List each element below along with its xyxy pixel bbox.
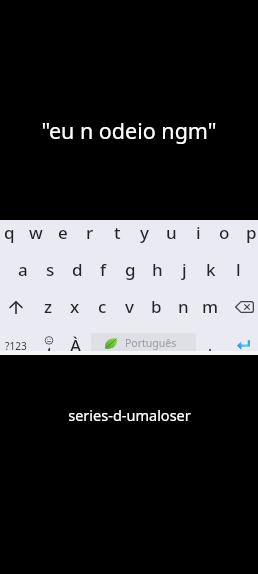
button[interactable]: ?123 — [0, 330, 31, 362]
button[interactable]: y — [131, 215, 157, 249]
button[interactable]: q — [0, 215, 22, 249]
staticText: c — [98, 295, 107, 318]
button[interactable]: Português — [91, 333, 196, 352]
staticText: Português — [125, 336, 177, 350]
staticText: q — [4, 221, 15, 244]
staticText: e — [58, 221, 68, 244]
button[interactable]: c — [89, 289, 115, 323]
button[interactable]: Emoji — [35, 330, 62, 362]
button[interactable]: z — [35, 289, 61, 323]
button[interactable]: À — [63, 328, 89, 362]
button[interactable]: k — [198, 252, 224, 286]
staticText: i — [196, 221, 201, 244]
button[interactable]: Shift — [2, 290, 29, 324]
staticText: À — [70, 334, 82, 357]
staticText: p — [246, 221, 257, 244]
staticText: t — [114, 221, 121, 244]
staticText: ?123 — [5, 339, 27, 353]
staticText: w — [29, 221, 43, 244]
button[interactable]: p — [238, 215, 258, 249]
button[interactable]: Backspace — [231, 290, 258, 324]
button[interactable]: i — [185, 215, 211, 249]
button[interactable]: s — [37, 252, 63, 286]
staticText: m — [202, 295, 219, 318]
button[interactable]: b — [143, 289, 169, 323]
staticText: d — [72, 258, 83, 281]
staticText: r — [86, 221, 94, 244]
staticText: z — [44, 295, 53, 318]
button[interactable]: h — [144, 252, 170, 286]
button[interactable]: o — [211, 215, 237, 249]
staticText: v — [125, 295, 134, 318]
button[interactable]: t — [104, 215, 130, 249]
button[interactable]: w — [23, 215, 49, 249]
staticText: . — [208, 335, 213, 355]
staticText: series-d-umaloser — [68, 405, 191, 425]
button[interactable]: Enter — [230, 328, 257, 360]
staticText: j — [182, 258, 187, 281]
staticText: y — [140, 221, 149, 244]
staticText: n — [178, 295, 189, 318]
staticText: "eu n odeio ngm" — [41, 116, 217, 145]
button[interactable]: n — [170, 289, 196, 323]
button[interactable]: j — [171, 252, 197, 286]
staticText: u — [166, 221, 177, 244]
button[interactable]: d — [64, 252, 90, 286]
staticText: s — [46, 258, 55, 281]
staticText: b — [151, 295, 162, 318]
button[interactable]: g — [117, 252, 143, 286]
staticText: x — [70, 295, 80, 318]
button[interactable]: m — [197, 289, 223, 323]
button[interactable]: a — [10, 252, 36, 286]
staticText: h — [152, 258, 163, 281]
button[interactable]: e — [50, 215, 76, 249]
button[interactable]: x — [62, 289, 88, 323]
button[interactable]: l — [225, 252, 251, 286]
staticText: k — [206, 258, 216, 281]
staticText: f — [100, 258, 107, 281]
staticText: g — [125, 258, 136, 281]
button[interactable]: f — [90, 252, 116, 286]
staticText: o — [219, 221, 230, 244]
staticText: a — [18, 258, 28, 281]
staticText: l — [236, 258, 241, 281]
button[interactable]: r — [77, 215, 103, 249]
button[interactable]: v — [116, 289, 142, 323]
button[interactable]: . — [197, 328, 223, 362]
button[interactable]: u — [158, 215, 184, 249]
